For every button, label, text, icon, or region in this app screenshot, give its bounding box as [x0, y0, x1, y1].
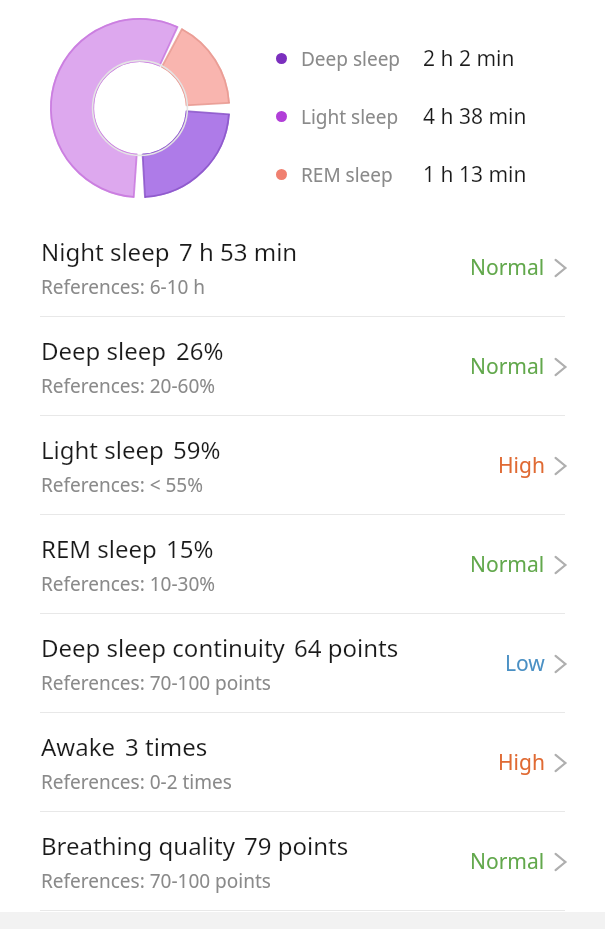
- staticText: 79 points: [244, 829, 349, 862]
- staticText: 4 h 38 min: [423, 102, 527, 131]
- staticText: High: [498, 748, 545, 777]
- other: Open Breathing quality details: [554, 850, 567, 874]
- staticText: 59%: [173, 433, 221, 466]
- staticText: Breathing quality: [41, 829, 235, 862]
- staticText: 7 h 53 min: [179, 235, 298, 268]
- staticText: Normal: [470, 847, 545, 876]
- staticText: Light sleep: [41, 433, 164, 466]
- button[interactable]: Light sleep: [0, 416, 605, 514]
- other: Open Deep sleep details: [554, 355, 567, 379]
- staticText: 15%: [166, 532, 214, 565]
- button[interactable]: Breathing quality: [0, 812, 605, 910]
- staticText: Normal: [470, 550, 545, 579]
- staticText: 26%: [176, 334, 224, 367]
- other: Open REM sleep details: [554, 553, 567, 577]
- button[interactable]: REM sleep: [0, 515, 605, 613]
- staticText: 64 points: [294, 631, 399, 664]
- staticText: 2 h 2 min: [423, 44, 515, 73]
- staticText: Deep sleep: [41, 334, 167, 367]
- staticText: Awake: [41, 730, 116, 763]
- button[interactable]: Deep sleep continuity: [0, 614, 605, 712]
- staticText: REM sleep: [301, 162, 393, 188]
- other: Open Deep sleep continuity details: [554, 652, 567, 676]
- staticText: Low: [505, 649, 545, 678]
- staticText: 3 times: [125, 730, 208, 763]
- staticText: References: 6-10 h: [41, 274, 206, 300]
- staticText: High: [498, 451, 545, 480]
- staticText: Normal: [470, 253, 545, 282]
- staticText: Night sleep: [41, 235, 170, 268]
- button[interactable]: Deep sleep: [0, 317, 605, 415]
- staticText: Deep sleep continuity: [41, 631, 285, 664]
- staticText: References: 70-100 points: [41, 670, 271, 696]
- button[interactable]: Night sleep: [0, 218, 605, 316]
- button[interactable]: Awake: [0, 713, 605, 811]
- staticText: References: 70-100 points: [41, 868, 271, 894]
- other: Open Light sleep details: [554, 454, 567, 478]
- other: Open Night sleep details: [554, 256, 567, 280]
- staticText: References: 10-30%: [41, 571, 216, 597]
- staticText: Deep sleep: [301, 46, 401, 72]
- staticText: References: 20-60%: [41, 373, 216, 399]
- staticText: 1 h 13 min: [423, 160, 527, 189]
- staticText: References: < 55%: [41, 472, 204, 498]
- other: Open Awake details: [554, 751, 567, 775]
- staticText: References: 0-2 times: [41, 769, 232, 795]
- staticText: Light sleep: [301, 104, 399, 130]
- staticText: Normal: [470, 352, 545, 381]
- staticText: REM sleep: [41, 532, 157, 565]
